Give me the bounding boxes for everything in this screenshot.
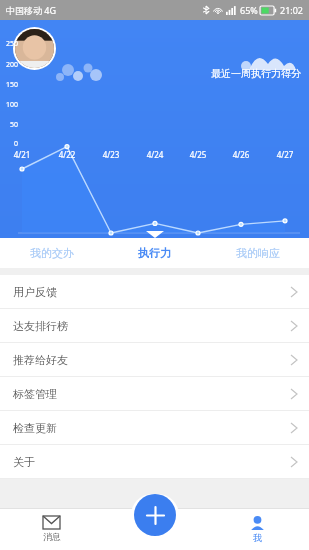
staticText: 4/25 (186, 149, 210, 160)
button[interactable]: 我 (206, 508, 309, 550)
staticText: 65% (240, 4, 258, 16)
staticText: 4/23 (99, 149, 123, 160)
staticText: 250 (2, 39, 18, 49)
button[interactable]: 我的交办 (0, 238, 103, 268)
staticText: 用户反馈 (13, 285, 57, 299)
button[interactable]: 推荐给好友 (0, 343, 309, 377)
button[interactable]: 检查更新 (0, 411, 309, 445)
staticText: 4/26 (229, 149, 253, 160)
staticText: 执行力 (138, 246, 171, 260)
staticText: 200 (2, 60, 18, 70)
staticText: 达友排行榜 (13, 319, 68, 333)
staticText: 消息 (43, 531, 61, 542)
staticText: 标签管理 (13, 387, 57, 401)
button[interactable]: 消息 (0, 508, 103, 550)
staticText: 4/24 (143, 149, 167, 160)
button[interactable]: 标签管理 (0, 377, 309, 411)
staticText: 最近一周执行力得分 (211, 67, 301, 80)
button[interactable]: 用户反馈 (0, 275, 309, 309)
staticText: 关于 (13, 455, 35, 469)
button[interactable]: Profile avatar (13, 27, 56, 70)
button[interactable]: Add (134, 494, 176, 536)
staticText: 50 (2, 120, 18, 130)
staticText: 推荐给好友 (13, 353, 68, 367)
staticText: 检查更新 (13, 421, 57, 435)
staticText: 150 (2, 80, 18, 90)
staticText: 我的交办 (30, 246, 74, 260)
staticText: 100 (2, 100, 18, 110)
staticText: 我 (253, 532, 262, 543)
staticText: 0 (2, 139, 18, 149)
staticText: 4/22 (55, 149, 79, 160)
button[interactable]: 关于 (0, 445, 309, 479)
staticText: 4/21 (10, 149, 34, 160)
staticText: 21:02 (280, 4, 304, 16)
staticText: 我的响应 (236, 246, 280, 260)
staticText: 4/27 (273, 149, 297, 160)
button[interactable]: 我的响应 (206, 238, 309, 268)
staticText: 中国移动 4G (6, 4, 57, 16)
button[interactable]: 达友排行榜 (0, 309, 309, 343)
button[interactable]: 执行力 (103, 238, 206, 268)
